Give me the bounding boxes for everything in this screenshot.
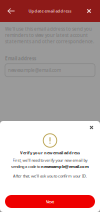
staticText: Email address [5,55,36,62]
button[interactable]: Close [86,122,97,133]
staticText: First, we'll need to verify your new ema… [12,157,87,163]
staticText: Next [45,199,54,204]
staticText: newexample@email.com [8,67,61,73]
staticText: Verify your new email address [20,150,80,155]
staticText: After that, we'll ask you to confirm you… [13,173,87,179]
button[interactable]: Back [2,0,20,22]
staticText: Update email address [28,8,71,14]
staticText: sending a code to newexample@email.com [11,164,89,169]
button[interactable]: Close [80,0,98,22]
staticText: We'll use this email address to send you… [5,26,94,44]
button[interactable]: Next [5,195,95,208]
